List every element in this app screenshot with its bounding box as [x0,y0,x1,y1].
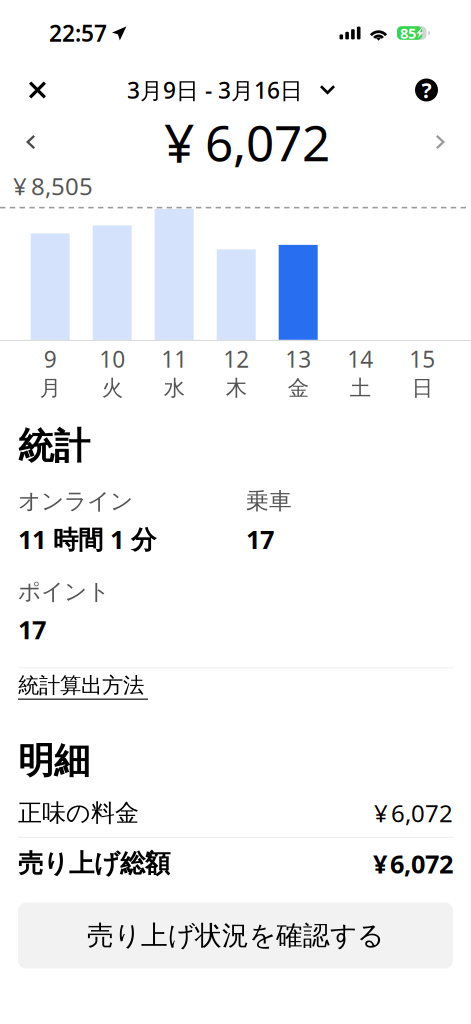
staticText: 売り上げ状況を確認する [87,919,384,952]
staticText: 火 [102,375,123,401]
button[interactable]: 前の週 [0,119,60,165]
staticText: 正味の料金 [18,798,139,828]
button[interactable]: ヘルプ [415,67,471,113]
staticText: ¥ [164,107,195,177]
staticText: 6,072 [391,797,453,829]
button[interactable]: 売り上げ状況を確認する [18,902,453,968]
staticText: 統計 [18,424,90,468]
staticText: 14 [347,344,373,374]
staticText: ¥ [13,170,27,202]
staticText: 6,072 [205,109,330,175]
staticText: 17 [18,613,46,646]
staticText: 月 [40,375,61,401]
staticText: 17 [246,522,274,556]
button[interactable]: 閉じる [0,67,75,113]
staticText: 6,072 [390,847,453,880]
button[interactable]: 3月9日 - 3月16日 [75,67,415,113]
staticText: 乗車 [246,487,292,515]
staticText: 9 [44,344,57,374]
staticText: 明細 [18,739,90,783]
staticText: 22:57 [49,18,107,48]
staticText: 8,505 [31,170,93,202]
staticText: ¥ [374,797,388,829]
staticText: 10 [99,344,125,374]
staticText: オンライン [18,487,133,515]
staticText: 3月9日 - 3月16日 [127,75,303,105]
staticText: 木 [226,375,247,401]
button[interactable]: 統計算出方法 [18,672,148,700]
staticText: 売り上げ総額 [18,848,170,879]
staticText: 水 [164,375,185,401]
staticText: 土 [350,375,371,401]
staticText: ? [421,76,431,104]
staticText: 統計算出方法 [18,672,144,699]
staticText: 11 [161,344,187,374]
staticText: ポイント [18,578,110,606]
staticText: 13 [285,344,311,374]
staticText: 85 [400,23,416,43]
staticText: 11 時間 1 分 [18,522,156,556]
staticText: 日 [412,375,433,401]
staticText: 12 [223,344,249,374]
staticText: 15 [409,344,435,374]
button[interactable]: 次の週 [411,119,471,165]
staticText: 金 [288,375,309,401]
staticText: ¥ [373,847,387,880]
